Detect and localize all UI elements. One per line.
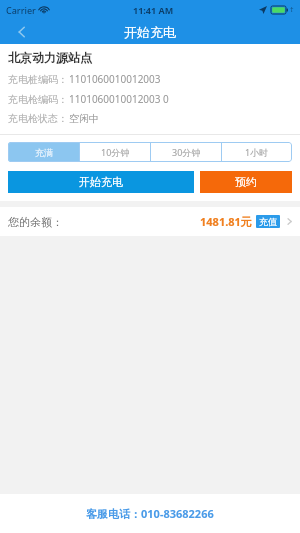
staticText: 充电桩编码：	[8, 73, 68, 86]
button[interactable]: 开始充电	[8, 171, 194, 193]
button[interactable]: 充值	[259, 216, 277, 227]
staticText: 空闲中	[69, 112, 99, 125]
button[interactable]: 您的余额：	[0, 207, 300, 236]
staticText: 您的余额：	[8, 215, 63, 229]
button[interactable]: 1小时	[222, 142, 292, 162]
staticText: 充电枪状态：	[8, 112, 68, 125]
staticText: †	[290, 5, 294, 15]
button[interactable]: 10分钟	[80, 142, 150, 162]
staticText: 1101060010012003	[69, 72, 161, 86]
staticText: 10分钟	[101, 146, 130, 158]
button[interactable]: 客服电话：010-83682266	[82, 502, 218, 525]
staticText: 开始充电	[79, 175, 123, 189]
button[interactable]: 30分钟	[151, 142, 221, 162]
staticText: 1101060010012003 0	[69, 92, 169, 106]
staticText: 充满	[35, 147, 53, 158]
staticText: 充值	[259, 216, 277, 227]
button[interactable]: 充满	[8, 142, 79, 162]
staticText: 客服电话：010-83682266	[86, 506, 214, 521]
staticText: 1小时	[245, 146, 269, 158]
staticText: 北京动力源站点	[8, 50, 92, 65]
staticText: 1481.81元	[200, 214, 252, 229]
staticText: 充电枪编码：	[8, 93, 68, 106]
staticText: 11:41 AM	[133, 4, 174, 16]
staticText: 30分钟	[172, 146, 201, 158]
staticText: Carrier	[6, 4, 36, 16]
staticText: 预约	[235, 175, 257, 189]
staticText: 开始充电	[124, 24, 176, 40]
button[interactable]: 预约	[200, 171, 292, 193]
button[interactable]: Back	[0, 20, 44, 44]
